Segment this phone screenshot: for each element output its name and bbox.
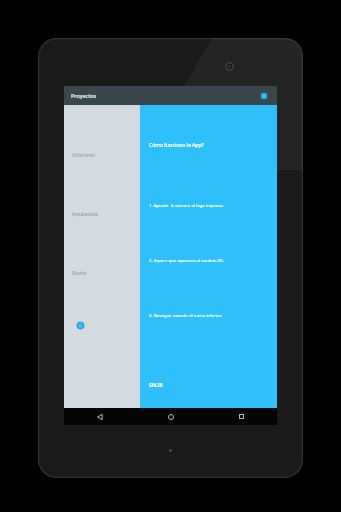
staticText: 2. Espere que aparezca el modelo 3D. [149,257,225,263]
button[interactable]: SALIR [149,382,163,389]
staticText: 1. Apunte la camara al logo impreso. [149,202,224,208]
button[interactable]: Ayuda [258,90,270,102]
button[interactable]: Urbanismo [64,149,140,161]
button[interactable]: Diseño [64,267,140,279]
button[interactable]: Back [64,408,135,425]
staticText: SALIR [149,382,163,389]
staticText: Cómo funciona la App? [149,142,204,149]
button[interactable]: Información [72,317,88,333]
staticText: Proyectos [71,92,97,99]
button[interactable]: Arquitectura [64,208,140,220]
staticText: Arquitectura [72,211,98,217]
staticText: Diseño [72,270,87,276]
button[interactable]: Home [135,408,206,425]
button[interactable]: Recent apps [206,408,277,425]
staticText: 3. Navegue usando el menu inferior. [149,312,222,318]
staticText: Urbanismo [72,152,95,158]
